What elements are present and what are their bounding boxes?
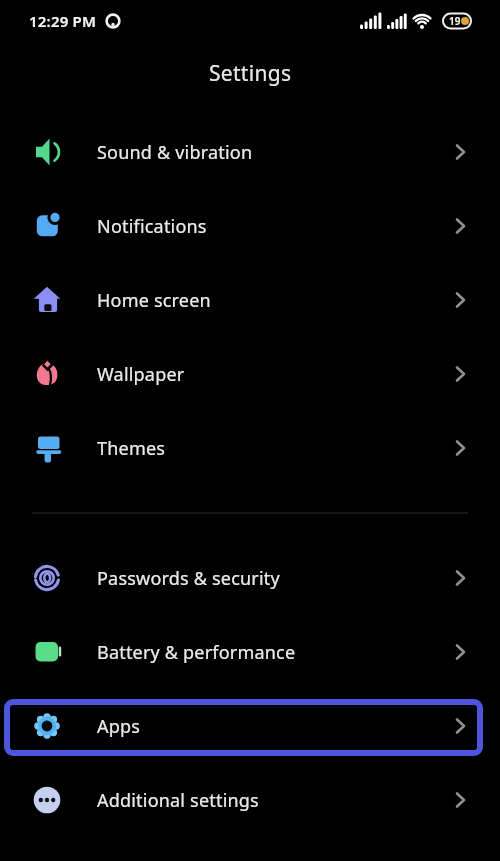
staticText: Notifications xyxy=(97,214,207,239)
staticText: Themes xyxy=(97,436,166,461)
staticText: Passwords & security xyxy=(97,566,280,591)
button[interactable]: Notifications xyxy=(0,189,500,263)
button[interactable]: Home screen xyxy=(0,263,500,337)
button[interactable]: Sound & vibration xyxy=(0,115,500,189)
button[interactable]: Wallpaper xyxy=(0,337,500,411)
button[interactable]: Apps xyxy=(0,689,500,763)
staticText: Settings xyxy=(209,59,292,88)
staticText: Home screen xyxy=(97,288,211,313)
staticText: Sound & vibration xyxy=(97,140,253,165)
staticText: Additional settings xyxy=(97,788,259,813)
button[interactable]: Battery & performance xyxy=(0,615,500,689)
staticText: 19 xyxy=(449,14,461,28)
staticText: 12:29 PM xyxy=(29,11,97,31)
button[interactable]: Passwords & security xyxy=(0,541,500,615)
button[interactable]: Additional settings xyxy=(0,763,500,837)
staticText: Wallpaper xyxy=(97,362,185,387)
staticText: Battery & performance xyxy=(97,640,296,665)
staticText: Apps xyxy=(97,714,141,739)
button[interactable]: Themes xyxy=(0,411,500,485)
